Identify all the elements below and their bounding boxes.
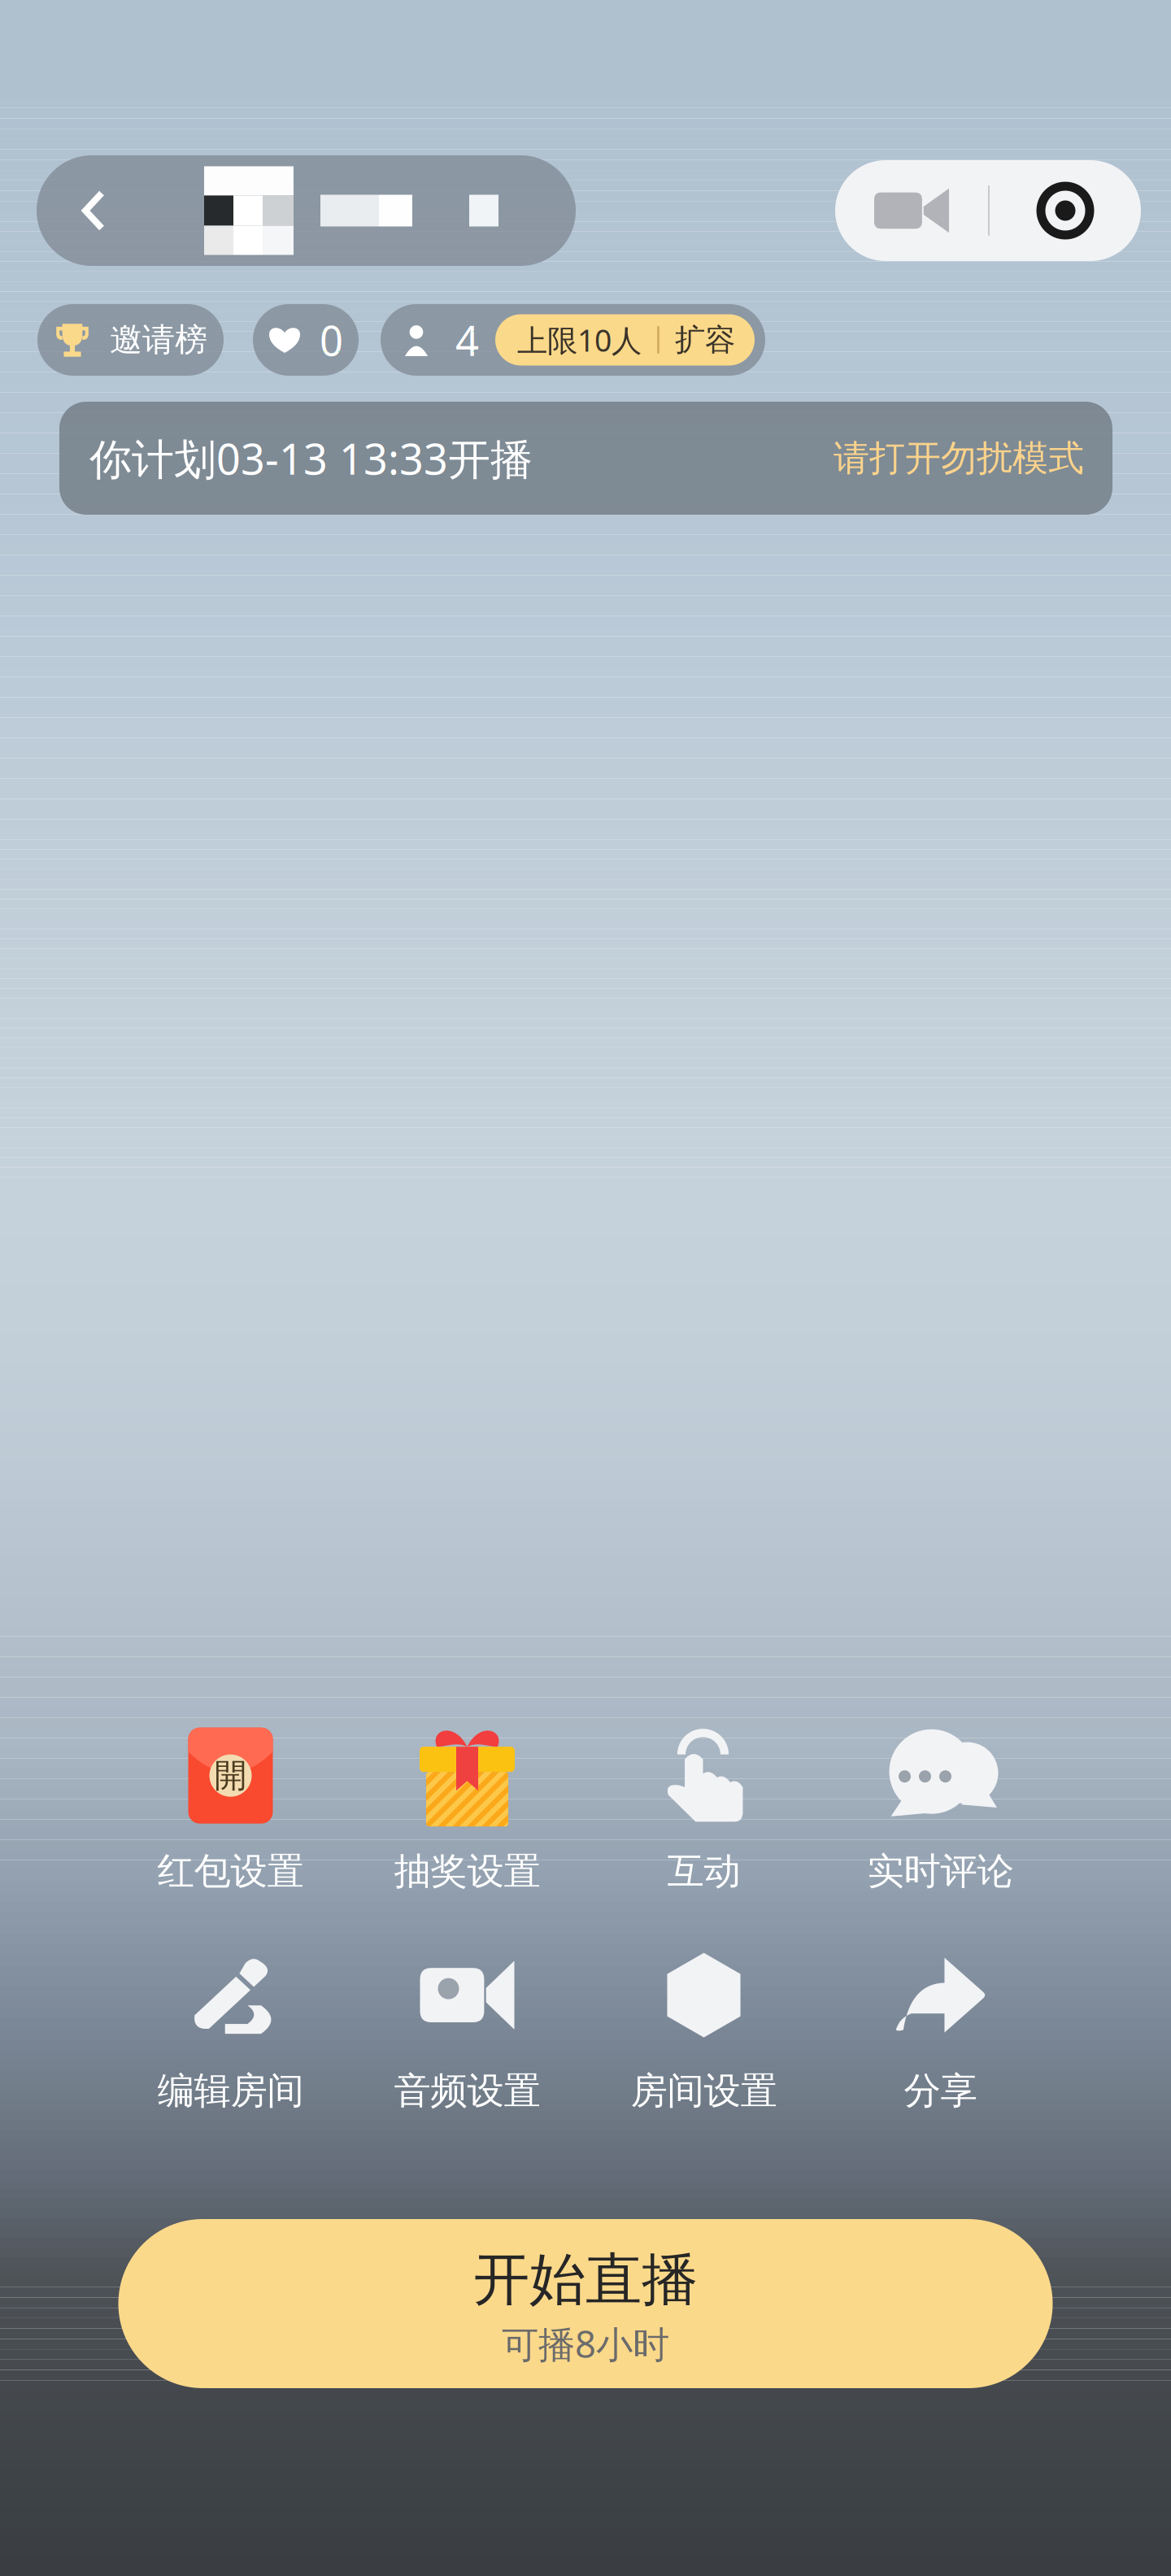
- staticText: 上限10人: [517, 320, 642, 360]
- button[interactable]: 你计划03-13 13:33开播: [59, 402, 1112, 515]
- staticText: 你计划03-13 13:33开播: [89, 430, 533, 486]
- staticText: 红包设置: [157, 1849, 304, 1894]
- staticText: 房间设置: [631, 2068, 777, 2114]
- button[interactable]: 邀请榜: [37, 304, 224, 376]
- button[interactable]: 实时评论: [839, 1723, 1042, 1898]
- staticText: 请打开勿扰模式: [834, 436, 1084, 480]
- staticText: 互动: [667, 1849, 740, 1894]
- button[interactable]: 开始录制: [990, 160, 1141, 261]
- staticText: 音频设置: [394, 2068, 540, 2114]
- staticText: 抽奖设置: [394, 1849, 540, 1894]
- staticText: 编辑房间: [157, 2068, 304, 2114]
- staticText: 開: [214, 1756, 247, 1796]
- button[interactable]: 0: [253, 304, 359, 376]
- staticText: 实时评论: [867, 1849, 1014, 1894]
- button[interactable]: 分享: [839, 1943, 1042, 2117]
- staticText: 开始直播: [473, 2245, 698, 2314]
- button[interactable]: 互动: [602, 1723, 805, 1898]
- staticText: 邀请榜: [110, 320, 207, 360]
- button[interactable]: 摄像头: [835, 160, 988, 261]
- staticText: 0: [320, 313, 343, 367]
- button[interactable]: 返回: [37, 155, 576, 266]
- button[interactable]: 抽奖设置: [366, 1723, 569, 1898]
- button[interactable]: 開: [129, 1723, 332, 1898]
- staticText: 4: [455, 313, 479, 367]
- staticText: 可播8小时: [502, 2319, 669, 2368]
- staticText: 扩容: [675, 321, 735, 359]
- button[interactable]: 开始直播: [118, 2219, 1053, 2388]
- button[interactable]: 房间设置: [602, 1943, 805, 2117]
- staticText: 分享: [904, 2068, 977, 2114]
- button[interactable]: 编辑房间: [129, 1943, 332, 2117]
- button[interactable]: 4: [381, 304, 765, 376]
- button[interactable]: 音频设置: [366, 1943, 569, 2117]
